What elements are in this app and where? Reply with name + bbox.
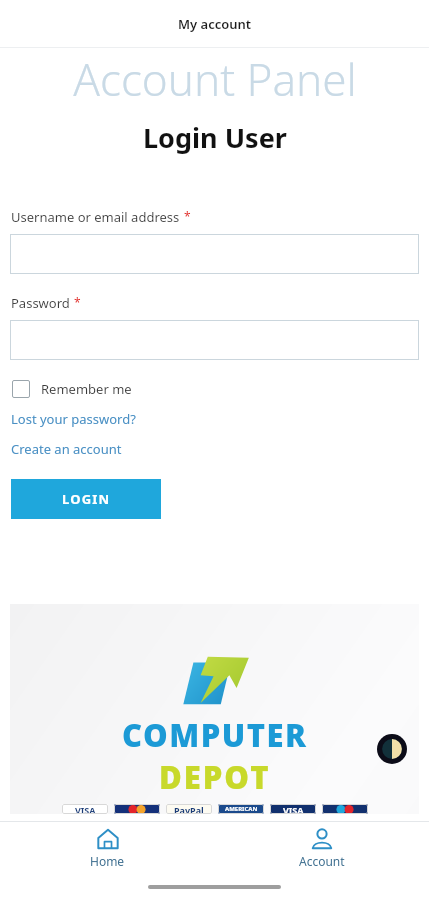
other: Account xyxy=(311,828,333,850)
button[interactable]: Account xyxy=(214,822,429,874)
staticText: Create an account xyxy=(11,440,122,458)
staticText: Account Panel xyxy=(73,49,357,109)
button[interactable]: Create an account xyxy=(11,440,122,458)
staticText: Password xyxy=(11,294,70,312)
button[interactable]: COMPUTER xyxy=(10,604,419,814)
button[interactable]: Remember me xyxy=(11,378,133,400)
staticText: My account xyxy=(178,15,252,33)
button[interactable] xyxy=(10,320,419,360)
staticText: AMERICAN xyxy=(225,805,258,813)
staticText: Lost your password? xyxy=(11,410,136,428)
staticText: Remember me xyxy=(41,380,132,398)
staticText: VISA xyxy=(75,804,96,814)
staticText: VISA xyxy=(283,804,304,814)
staticText: COMPUTER xyxy=(122,714,308,756)
button[interactable]: LOGIN xyxy=(11,479,161,519)
staticText: Home xyxy=(90,853,125,869)
button[interactable]: Accessibility xyxy=(377,734,407,764)
button[interactable]: Lost your password? xyxy=(11,410,136,428)
staticText: * xyxy=(184,208,191,224)
staticText: Account xyxy=(299,853,345,869)
staticText: Username or email address xyxy=(11,208,180,226)
button[interactable] xyxy=(10,234,419,274)
staticText: LOGIN xyxy=(62,490,111,508)
staticText: DEPOT xyxy=(159,756,271,798)
staticText: PayPal xyxy=(174,804,204,814)
staticText: Login User xyxy=(143,119,287,156)
other: Home xyxy=(97,828,119,850)
button[interactable]: Home xyxy=(0,822,214,874)
staticText: * xyxy=(74,294,81,310)
